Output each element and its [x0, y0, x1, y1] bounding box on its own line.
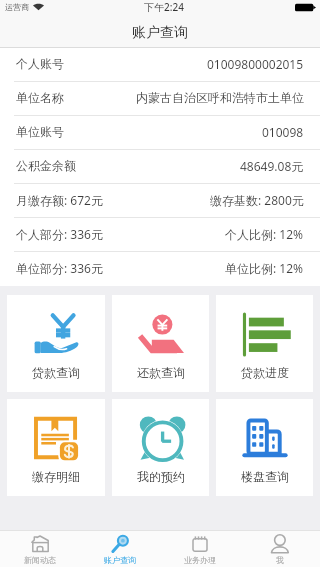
staticText: 010098 — [262, 124, 304, 140]
staticText: 个人比例: 12% — [225, 226, 304, 242]
other: 账户查询 — [110, 534, 130, 554]
staticText: 贷款查询 — [32, 365, 80, 380]
button[interactable]: 账户查询 — [80, 531, 160, 567]
staticText: 账户查询 — [132, 24, 188, 42]
staticText: 账户查询 — [104, 555, 136, 565]
button[interactable]: 单位部分: 336元 — [0, 252, 320, 286]
staticText: 缴存明细 — [32, 469, 80, 484]
staticText: 48649.08元 — [240, 158, 304, 174]
button[interactable]: 业务办理 — [160, 531, 240, 567]
staticText: 单位比例: 12% — [225, 260, 304, 276]
button[interactable]: 个人账号 — [0, 48, 320, 82]
staticText: 我的预约 — [137, 469, 185, 484]
button[interactable]: 我 — [240, 531, 320, 567]
staticText: 下午2:24 — [144, 0, 184, 14]
button[interactable]: 楼盘查询 — [216, 399, 313, 496]
button[interactable]: 单位名称 — [0, 82, 320, 116]
staticText: 业务办理 — [184, 555, 216, 565]
button[interactable]: 月缴存额: 672元 — [0, 184, 320, 218]
staticText: 个人账号 — [16, 56, 64, 71]
button[interactable]: 单位账号 — [0, 116, 320, 150]
staticText: 单位账号 — [16, 124, 64, 139]
button[interactable]: 贷款查询 — [7, 295, 105, 392]
staticText: 楼盘查询 — [241, 469, 289, 484]
staticText: 运营商 — [5, 2, 29, 12]
button[interactable]: 公积金余额 — [0, 150, 320, 184]
staticText: 个人部分: 336元 — [16, 226, 103, 242]
staticText: 内蒙古自治区呼和浩特市土单位 — [136, 90, 304, 105]
staticText: 单位名称 — [16, 90, 64, 105]
other: 新闻动态 — [30, 534, 50, 554]
other: 我 — [270, 534, 290, 554]
button[interactable]: 贷款进度 — [216, 295, 313, 392]
staticText: 公积金余额 — [16, 158, 76, 173]
staticText: 贷款进度 — [241, 365, 289, 380]
staticText: 月缴存额: 672元 — [16, 192, 103, 208]
staticText: 缴存基数: 2800元 — [210, 192, 304, 208]
button[interactable]: 还款查询 — [112, 295, 209, 392]
button[interactable]: 个人部分: 336元 — [0, 218, 320, 252]
button[interactable]: 我的预约 — [112, 399, 209, 496]
other: 业务办理 — [190, 534, 210, 554]
staticText: 新闻动态 — [24, 555, 56, 565]
button[interactable]: 缴存明细 — [7, 399, 105, 496]
button[interactable]: 新闻动态 — [0, 531, 80, 567]
staticText: 我 — [276, 555, 284, 565]
staticText: 还款查询 — [137, 365, 185, 380]
staticText: 单位部分: 336元 — [16, 260, 103, 276]
staticText: 01009800002015 — [207, 56, 304, 72]
